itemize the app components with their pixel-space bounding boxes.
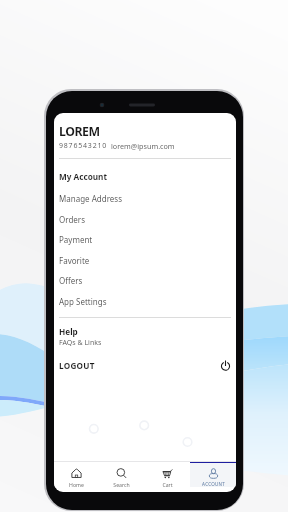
staticText: Offers bbox=[59, 275, 83, 286]
staticText: Home bbox=[69, 481, 84, 488]
staticText: Manage Address bbox=[59, 193, 122, 204]
button[interactable]: Payment bbox=[54, 229, 236, 249]
button[interactable]: Orders bbox=[54, 209, 236, 229]
staticText: FAQs & Links bbox=[59, 338, 102, 348]
staticText: lorem@ipsum.com bbox=[111, 141, 175, 151]
staticText: My Account bbox=[59, 171, 107, 182]
button[interactable]: Home bbox=[54, 462, 99, 488]
button[interactable]: App Settings bbox=[54, 291, 236, 311]
button[interactable]: Favorite bbox=[54, 250, 236, 270]
button[interactable]: Manage Address bbox=[54, 188, 236, 208]
staticText: App Settings bbox=[59, 296, 107, 307]
staticText: Orders bbox=[59, 214, 85, 225]
other: Log out bbox=[220, 360, 231, 371]
button[interactable]: Offers bbox=[54, 270, 236, 290]
staticText: Help bbox=[59, 326, 78, 337]
staticText: Search bbox=[113, 481, 130, 488]
button[interactable]: LOGOUT bbox=[54, 358, 236, 372]
staticText: ACCOUNT bbox=[202, 481, 225, 487]
button[interactable]: Search bbox=[99, 462, 144, 488]
button[interactable]: My Account bbox=[54, 166, 236, 186]
staticText: Favorite bbox=[59, 255, 90, 266]
button[interactable]: Cart bbox=[144, 462, 190, 488]
staticText: Cart bbox=[162, 481, 173, 488]
staticText: Payment bbox=[59, 234, 93, 245]
staticText: 9876543210 bbox=[59, 141, 108, 151]
staticText: LOREM bbox=[59, 123, 100, 140]
staticText: LOGOUT bbox=[59, 360, 95, 371]
button[interactable]: ACCOUNT bbox=[190, 462, 236, 487]
